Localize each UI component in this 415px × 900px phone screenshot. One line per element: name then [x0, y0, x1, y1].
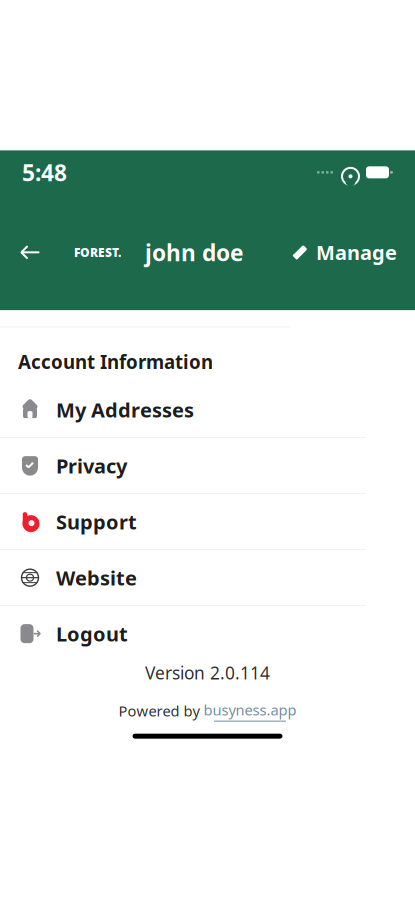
- button[interactable]: Support: [0, 494, 415, 550]
- staticText: 5:48: [22, 157, 67, 187]
- staticText: john doe: [145, 237, 244, 267]
- staticText: My Addresses: [56, 396, 194, 423]
- staticText: Privacy: [56, 452, 127, 479]
- button[interactable]: Manage: [291, 231, 397, 274]
- button[interactable]: Privacy: [0, 438, 415, 494]
- staticText: Version 2.0.114: [145, 661, 270, 684]
- staticText: Website: [56, 564, 137, 591]
- staticText: Account Information: [18, 349, 213, 374]
- staticText: FOREST.: [74, 244, 121, 260]
- button[interactable]: Back: [8, 230, 52, 274]
- button[interactable]: My Addresses: [0, 382, 415, 438]
- staticText: Manage: [316, 239, 397, 266]
- staticText: Powered by: [118, 701, 199, 721]
- staticText: Support: [56, 508, 137, 535]
- staticText: Logout: [56, 620, 128, 647]
- staticText: busyness.app: [203, 700, 296, 720]
- button[interactable]: Powered by: [118, 696, 296, 726]
- button[interactable]: Website: [0, 550, 415, 606]
- button[interactable]: Logout: [0, 606, 415, 661]
